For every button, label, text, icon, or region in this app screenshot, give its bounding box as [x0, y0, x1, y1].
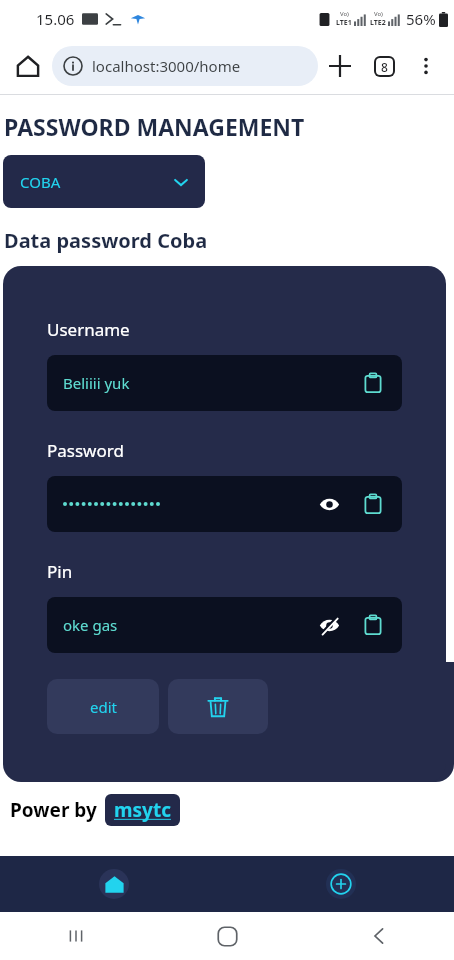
button[interactable]: localhost:3000/home	[52, 46, 318, 86]
staticText: LTE2	[370, 18, 386, 28]
staticText: Power by	[10, 797, 97, 823]
staticText: Data password Coba	[4, 227, 208, 254]
staticText: LTE1	[336, 18, 352, 28]
button[interactable]: More options	[406, 46, 446, 86]
staticText: COBA	[20, 172, 61, 192]
button[interactable]: Copy to clipboard	[358, 489, 388, 519]
button[interactable]: Tabs: 8 open	[362, 44, 406, 88]
staticText: Vo)	[340, 10, 349, 18]
button[interactable]: Copy to clipboard	[358, 610, 388, 640]
button[interactable]: New tab	[318, 44, 362, 88]
button[interactable]: Delete	[168, 679, 268, 734]
staticText: Password	[47, 439, 124, 462]
button[interactable]: COBA	[3, 155, 205, 208]
staticText: 15.06	[36, 9, 75, 29]
button[interactable]: Show value	[314, 610, 344, 640]
staticText: oke gas	[63, 615, 118, 635]
button[interactable]: Copy to clipboard	[358, 368, 388, 398]
button[interactable]: Home	[0, 856, 227, 912]
button[interactable]: edit	[47, 679, 159, 734]
button[interactable]: Hide value	[314, 489, 344, 519]
button[interactable]: Home	[152, 912, 303, 960]
staticText: Username	[47, 318, 130, 341]
button[interactable]: msytc	[105, 794, 180, 826]
button[interactable]: Recents	[0, 912, 152, 960]
staticText: 56%	[406, 9, 436, 29]
button[interactable]: Back	[303, 912, 454, 960]
staticText: edit	[90, 697, 117, 717]
staticText: PASSWORD MANAGEMENT	[4, 111, 305, 142]
button[interactable]: Home	[8, 46, 48, 86]
staticText: msytc	[114, 797, 171, 823]
staticText: Beliiii yuk	[63, 373, 130, 393]
button[interactable]: Add password	[227, 856, 454, 912]
staticText: Vo)	[374, 10, 383, 18]
staticText: 8	[381, 59, 388, 75]
staticText: Pin	[47, 560, 73, 583]
staticText: localhost:3000/home	[92, 56, 241, 76]
